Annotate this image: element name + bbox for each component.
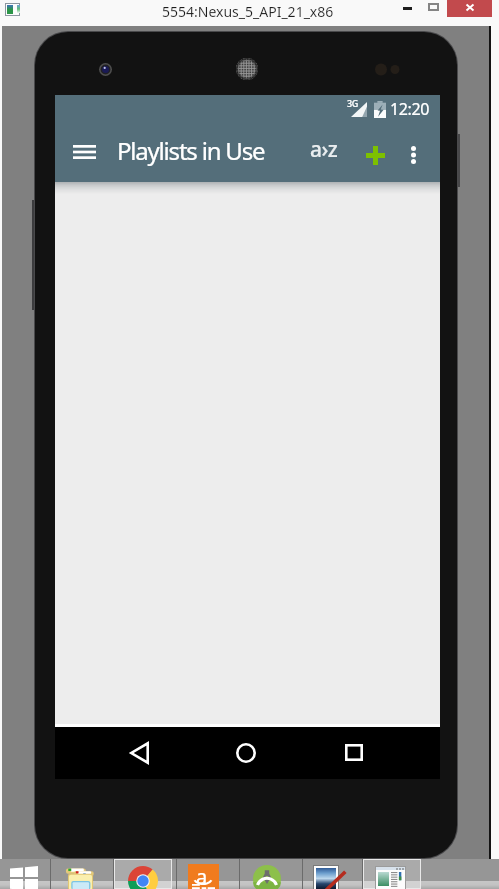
button[interactable]: Taskbar item (51, 859, 113, 889)
button[interactable]: Taskbar item (114, 859, 172, 889)
staticText: a (196, 863, 208, 889)
button[interactable]: Start (0, 859, 48, 889)
button[interactable]: Sort alphabetically (289, 128, 337, 180)
button[interactable]: Close (447, 0, 492, 17)
button[interactable]: Navigation menu (55, 128, 103, 176)
button[interactable]: Back (115, 729, 163, 777)
button[interactable]: Taskbar item (363, 859, 421, 889)
button[interactable]: Home (222, 729, 270, 777)
staticText: 5554:Nexus_5_API_21_x86 (162, 2, 334, 21)
button[interactable]: Taskbar item (240, 859, 302, 889)
button[interactable]: Minimize (392, 0, 420, 17)
staticText: 12:20 (390, 98, 429, 120)
staticText: a›z (310, 135, 338, 164)
button[interactable]: Recent apps (329, 729, 377, 777)
button[interactable]: Taskbar item (177, 859, 239, 889)
staticText: 3G (347, 97, 359, 109)
button[interactable]: Taskbar item (303, 859, 361, 889)
button[interactable]: More options (399, 128, 440, 180)
button[interactable]: Add playlist (352, 128, 399, 180)
staticText: Playlists in Use (117, 134, 265, 167)
button[interactable]: Maximize (420, 0, 447, 17)
